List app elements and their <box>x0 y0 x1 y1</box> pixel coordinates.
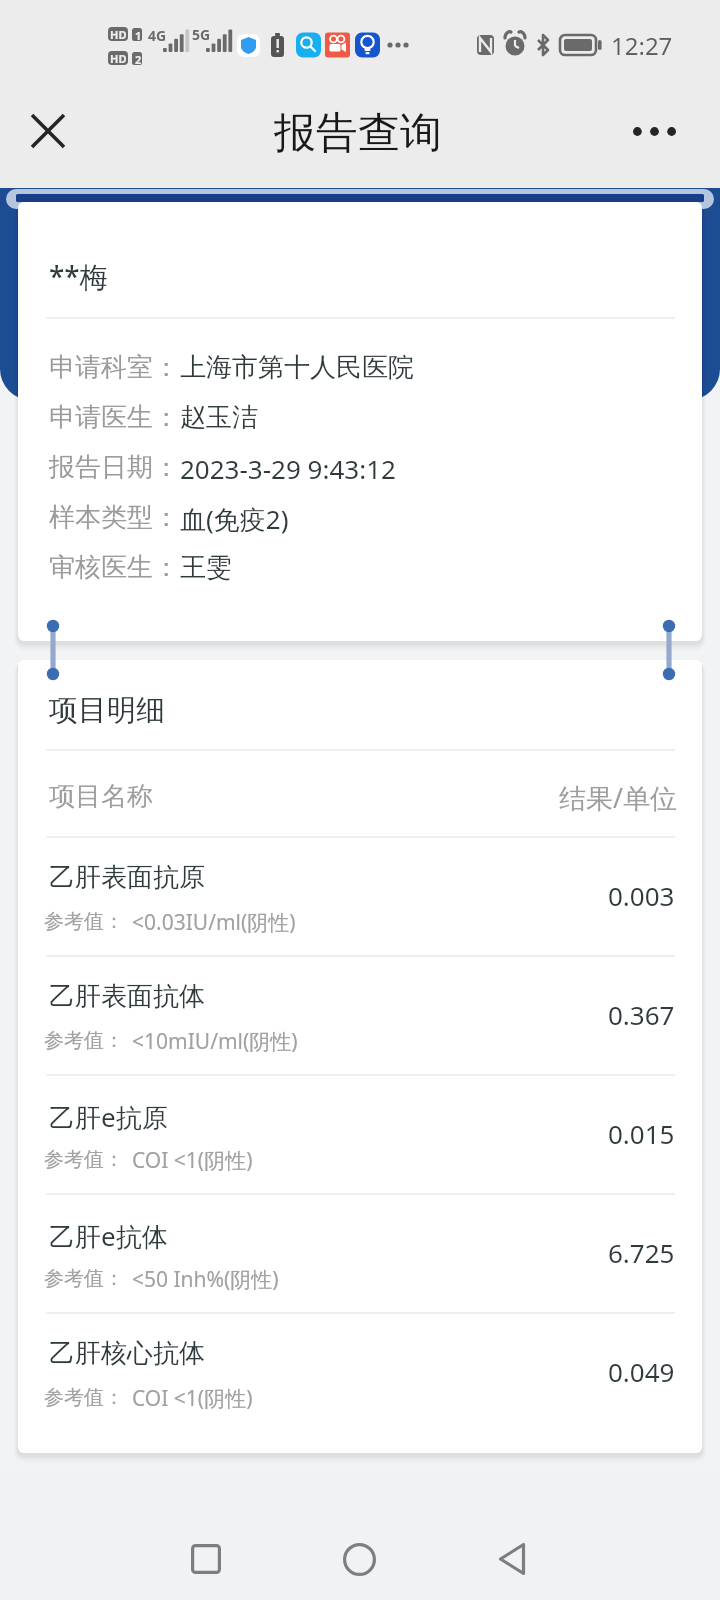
staticText: 上海市第十人民医院 <box>180 351 414 384</box>
staticText: 1 <box>135 28 142 43</box>
staticText: 乙肝e抗原 <box>49 1099 168 1135</box>
staticText: 0.015 <box>608 1116 675 1151</box>
staticText: COI <1(阴性) <box>132 1384 253 1413</box>
staticText: 申请科室： <box>49 351 179 384</box>
staticText: <0.03IU/ml(阴性) <box>132 908 296 937</box>
staticText: 报告日期： <box>49 451 179 484</box>
button[interactable]: 乙肝表面抗原 <box>18 836 702 955</box>
staticText: 2 <box>135 52 142 67</box>
staticText: 参考值： <box>44 1028 124 1053</box>
staticText: <50 Inh%(阴性) <box>132 1265 279 1294</box>
staticText: 0.003 <box>608 878 675 913</box>
staticText: <10mIU/ml(阴性) <box>132 1027 298 1056</box>
staticText: 12:27 <box>611 29 673 62</box>
staticText: 参考值： <box>44 1385 124 1410</box>
button[interactable]: Recents <box>166 1519 246 1599</box>
staticText: COI <1(阴性) <box>132 1146 253 1175</box>
button[interactable]: 乙肝e抗体 <box>18 1193 702 1312</box>
button[interactable]: Close <box>18 101 78 161</box>
staticText: 0.367 <box>608 997 675 1032</box>
staticText: 2023-3-29 9:43:12 <box>180 451 396 486</box>
button[interactable]: Back <box>472 1519 552 1599</box>
staticText: 报告查询 <box>274 107 442 160</box>
button[interactable]: 乙肝核心抗体 <box>18 1312 702 1431</box>
button[interactable]: 乙肝e抗原 <box>18 1074 702 1193</box>
staticText: 0.049 <box>608 1354 675 1389</box>
button[interactable]: Home <box>319 1519 399 1599</box>
staticText: 6.725 <box>608 1235 675 1270</box>
staticText: HD <box>110 51 127 66</box>
staticText: 5G <box>192 25 211 44</box>
staticText: 项目明细 <box>49 692 165 729</box>
staticText: 乙肝e抗体 <box>49 1218 168 1254</box>
staticText: **梅 <box>49 257 108 295</box>
staticText: 乙肝表面抗体 <box>49 980 205 1013</box>
button[interactable]: 乙肝表面抗体 <box>18 955 702 1074</box>
staticText: 4G <box>148 26 167 45</box>
staticText: 血(免疫2) <box>180 501 289 537</box>
staticText: 乙肝核心抗体 <box>49 1337 205 1370</box>
staticText: 项目名称 <box>49 780 153 813</box>
staticText: 王雯 <box>180 551 232 584</box>
staticText: HD <box>110 27 127 42</box>
staticText: 审核医生： <box>49 551 179 584</box>
staticText: 样本类型： <box>49 501 179 534</box>
staticText: 参考值： <box>44 1147 124 1172</box>
staticText: 参考值： <box>44 909 124 934</box>
button[interactable]: More options <box>620 101 688 161</box>
staticText: 结果/单位 <box>559 779 678 816</box>
staticText: 乙肝表面抗原 <box>49 861 205 894</box>
staticText: 赵玉洁 <box>180 401 258 434</box>
staticText: 参考值： <box>44 1266 124 1291</box>
staticText: 申请医生： <box>49 401 179 434</box>
